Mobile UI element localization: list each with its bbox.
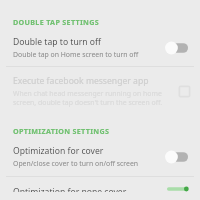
staticText: Optimization for cover: [13, 145, 104, 157]
staticText: When chat head messenger running on home: [13, 89, 162, 98]
button[interactable]: Optimization for cover: [0, 136, 200, 176]
button[interactable]: Execute facebook messenger app: [0, 67, 200, 115]
other: Switch, off: [164, 149, 191, 165]
staticText: OPTIMIZATION SETTINGS: [13, 126, 110, 136]
staticText: Open/close cover to turn on/off screen: [13, 159, 139, 168]
staticText: Double tap on Home screen to turn off sc…: [13, 50, 160, 59]
button[interactable]: Optimization for none cover: [0, 177, 200, 200]
staticText: Execute facebook messenger app: [13, 75, 149, 87]
staticText: DOUBLE TAP SETTINGS: [13, 17, 99, 27]
staticText: Optimization for none cover: [13, 186, 127, 192]
staticText: screen, double tap doesn't turn the scre…: [13, 98, 163, 107]
other: Checkbox, disabled: [178, 85, 191, 98]
staticText: Double tap to turn off: [13, 36, 101, 48]
button[interactable]: Double tap to turn off: [0, 27, 200, 66]
other: Switch, off: [164, 40, 191, 56]
other: Switch, on: [164, 186, 191, 192]
